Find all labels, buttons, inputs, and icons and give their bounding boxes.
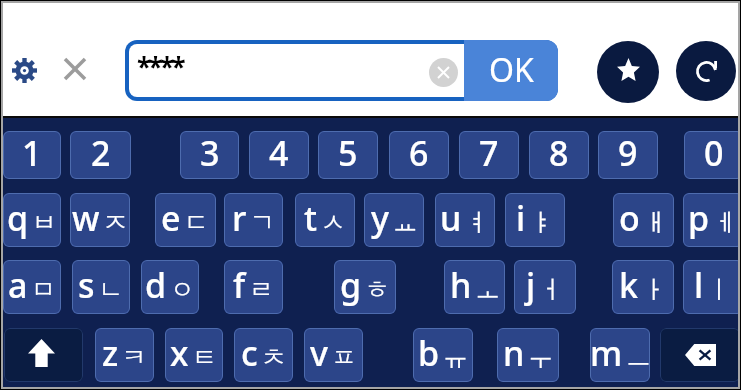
staticText: g ㅎ [340,262,390,308]
button[interactable]: e ㄷ [155,193,216,247]
button[interactable]: s ㄴ [72,260,130,314]
button[interactable]: Close [65,59,85,79]
button[interactable]: d ㅇ [141,260,199,314]
staticText: s ㄴ [78,262,124,308]
staticText: e ㄷ [161,195,210,241]
button[interactable]: x ㅌ [165,328,223,382]
staticText: 5 [338,131,358,176]
button[interactable]: Shift [4,328,83,382]
button[interactable]: **** [129,44,554,97]
staticText: v ㅍ [310,330,357,376]
button[interactable]: f ㄹ [224,260,283,314]
button[interactable]: o ㅐ [613,193,674,247]
button[interactable]: b ㅠ [413,328,473,382]
button[interactable]: Backspace [660,328,740,382]
staticText: d ㅇ [145,262,195,308]
other: Backspace [660,328,740,382]
button[interactable]: v ㅍ [304,328,363,382]
button[interactable]: h ㅗ [444,260,505,314]
button[interactable]: Favorite [597,41,659,103]
button[interactable]: r ㄱ [224,193,283,247]
staticText: q ㅂ [7,195,57,241]
button[interactable]: 5 [318,131,378,179]
staticText: p ㅔ [688,195,738,241]
staticText: 6 [409,131,429,176]
button[interactable]: j ㅓ [514,260,576,314]
button[interactable]: a ㅁ [3,260,61,314]
staticText: j ㅓ [526,262,564,308]
staticText: n ㅜ [503,330,553,376]
staticText: r ㄱ [232,195,276,241]
staticText: a ㅁ [8,262,57,308]
button[interactable]: 8 [529,131,589,179]
button[interactable]: t ㅅ [295,193,355,247]
staticText: 3 [200,131,220,176]
button[interactable]: Settings [12,58,37,83]
staticText: 0 [704,131,724,176]
button[interactable]: g ㅎ [334,260,396,314]
staticText: y ㅛ [371,195,418,241]
button[interactable]: 6 [389,131,449,179]
staticText: m ㅡ [590,330,650,376]
button[interactable]: 7 [459,131,519,179]
staticText: x ㅌ [170,330,218,376]
staticText: w ㅈ [72,195,129,241]
button[interactable]: 9 [598,131,658,179]
button[interactable]: 1 [3,131,61,179]
staticText: c ㅊ [241,330,287,376]
other: Shift [4,328,83,382]
staticText: 4 [269,131,289,176]
staticText: 8 [549,131,569,176]
staticText: o ㅐ [619,195,669,241]
button[interactable]: Refresh [676,41,736,101]
staticText: h ㅗ [450,262,500,308]
button[interactable]: 3 [180,131,239,179]
button[interactable]: y ㅛ [364,193,424,247]
staticText: 9 [618,131,638,176]
staticText: b ㅠ [418,330,468,376]
button[interactable]: p ㅔ [683,193,741,247]
button[interactable]: OK [464,40,558,101]
staticText: f ㄹ [233,262,274,308]
button[interactable]: 2 [70,131,131,179]
button[interactable]: l ㅣ [683,260,741,314]
button[interactable]: i ㅑ [505,193,565,247]
button[interactable]: w ㅈ [70,193,130,247]
staticText: 2 [91,131,111,176]
staticText: k ㅏ [619,262,667,308]
button[interactable]: Clear text [429,58,458,87]
button[interactable]: z ㅋ [95,328,154,382]
button[interactable]: 0 [684,131,741,179]
button[interactable]: u ㅕ [435,193,495,247]
staticText: t ㅅ [304,195,346,241]
staticText: **** [137,49,183,84]
staticText: 7 [479,131,499,176]
staticText: 1 [22,131,42,176]
button[interactable]: c ㅊ [234,328,293,382]
staticText: l ㅣ [694,262,732,308]
staticText: z ㅋ [102,330,147,376]
button[interactable]: n ㅜ [497,328,559,382]
staticText: u ㅕ [440,195,490,241]
button[interactable]: m ㅡ [590,328,650,382]
staticText: OK [489,48,534,92]
button[interactable]: k ㅏ [612,260,674,314]
button[interactable]: q ㅂ [3,193,61,247]
button[interactable]: 4 [249,131,309,179]
staticText: i ㅑ [516,195,554,241]
